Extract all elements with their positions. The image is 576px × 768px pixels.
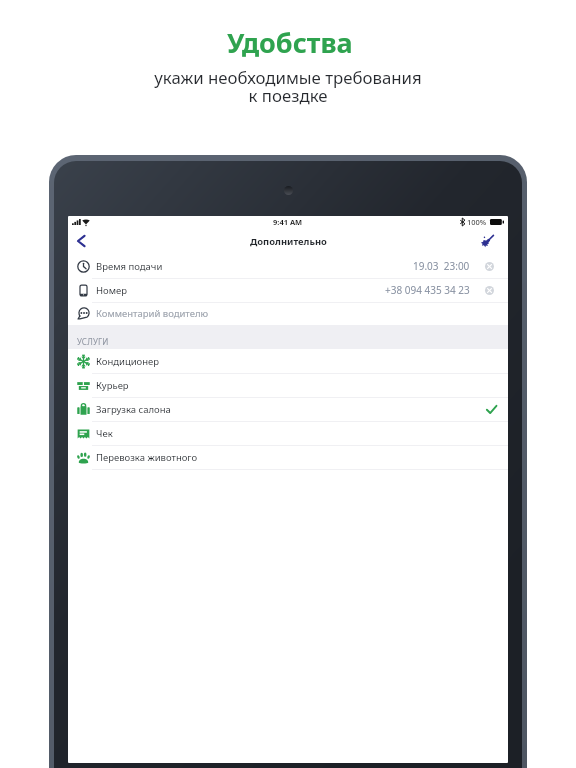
button[interactable]: Перевозка животного (68, 445, 508, 469)
staticText: Чек (96, 427, 113, 440)
staticText: Загрузка салона (96, 403, 171, 416)
staticText: укажи необходимые требования к поездке (154, 66, 422, 107)
button[interactable]: Время подачи (68, 254, 508, 278)
button[interactable]: Курьер (68, 373, 508, 397)
staticText: Курьер (96, 379, 129, 392)
staticText: УСЛУГИ (77, 336, 109, 347)
staticText: Комментарий водителю (96, 307, 209, 320)
staticText: Номер (96, 284, 128, 297)
button[interactable]: Чек (68, 421, 508, 445)
button[interactable]: Номер (68, 278, 508, 302)
staticText: 100% (467, 217, 487, 227)
staticText: Время подачи (96, 260, 163, 273)
staticText: Кондиционер (96, 355, 160, 368)
staticText: 19.03 23:00 (413, 259, 470, 273)
staticText: +38 094 435 34 23 (385, 283, 470, 297)
staticText: 9:41 AM (273, 217, 303, 227)
button[interactable]: Back (69, 230, 93, 252)
button[interactable]: Clear all (476, 230, 498, 252)
button[interactable]: Clear Номер (482, 283, 497, 298)
button[interactable]: Clear Время подачи (482, 259, 497, 274)
staticText: Перевозка животного (96, 451, 198, 464)
button[interactable]: Комментарий водителю (68, 302, 508, 325)
staticText: Удобства (227, 24, 353, 61)
staticText: Дополнительно (250, 235, 327, 248)
button[interactable]: Загрузка салона (68, 397, 508, 421)
button[interactable]: Кондиционер (68, 349, 508, 373)
